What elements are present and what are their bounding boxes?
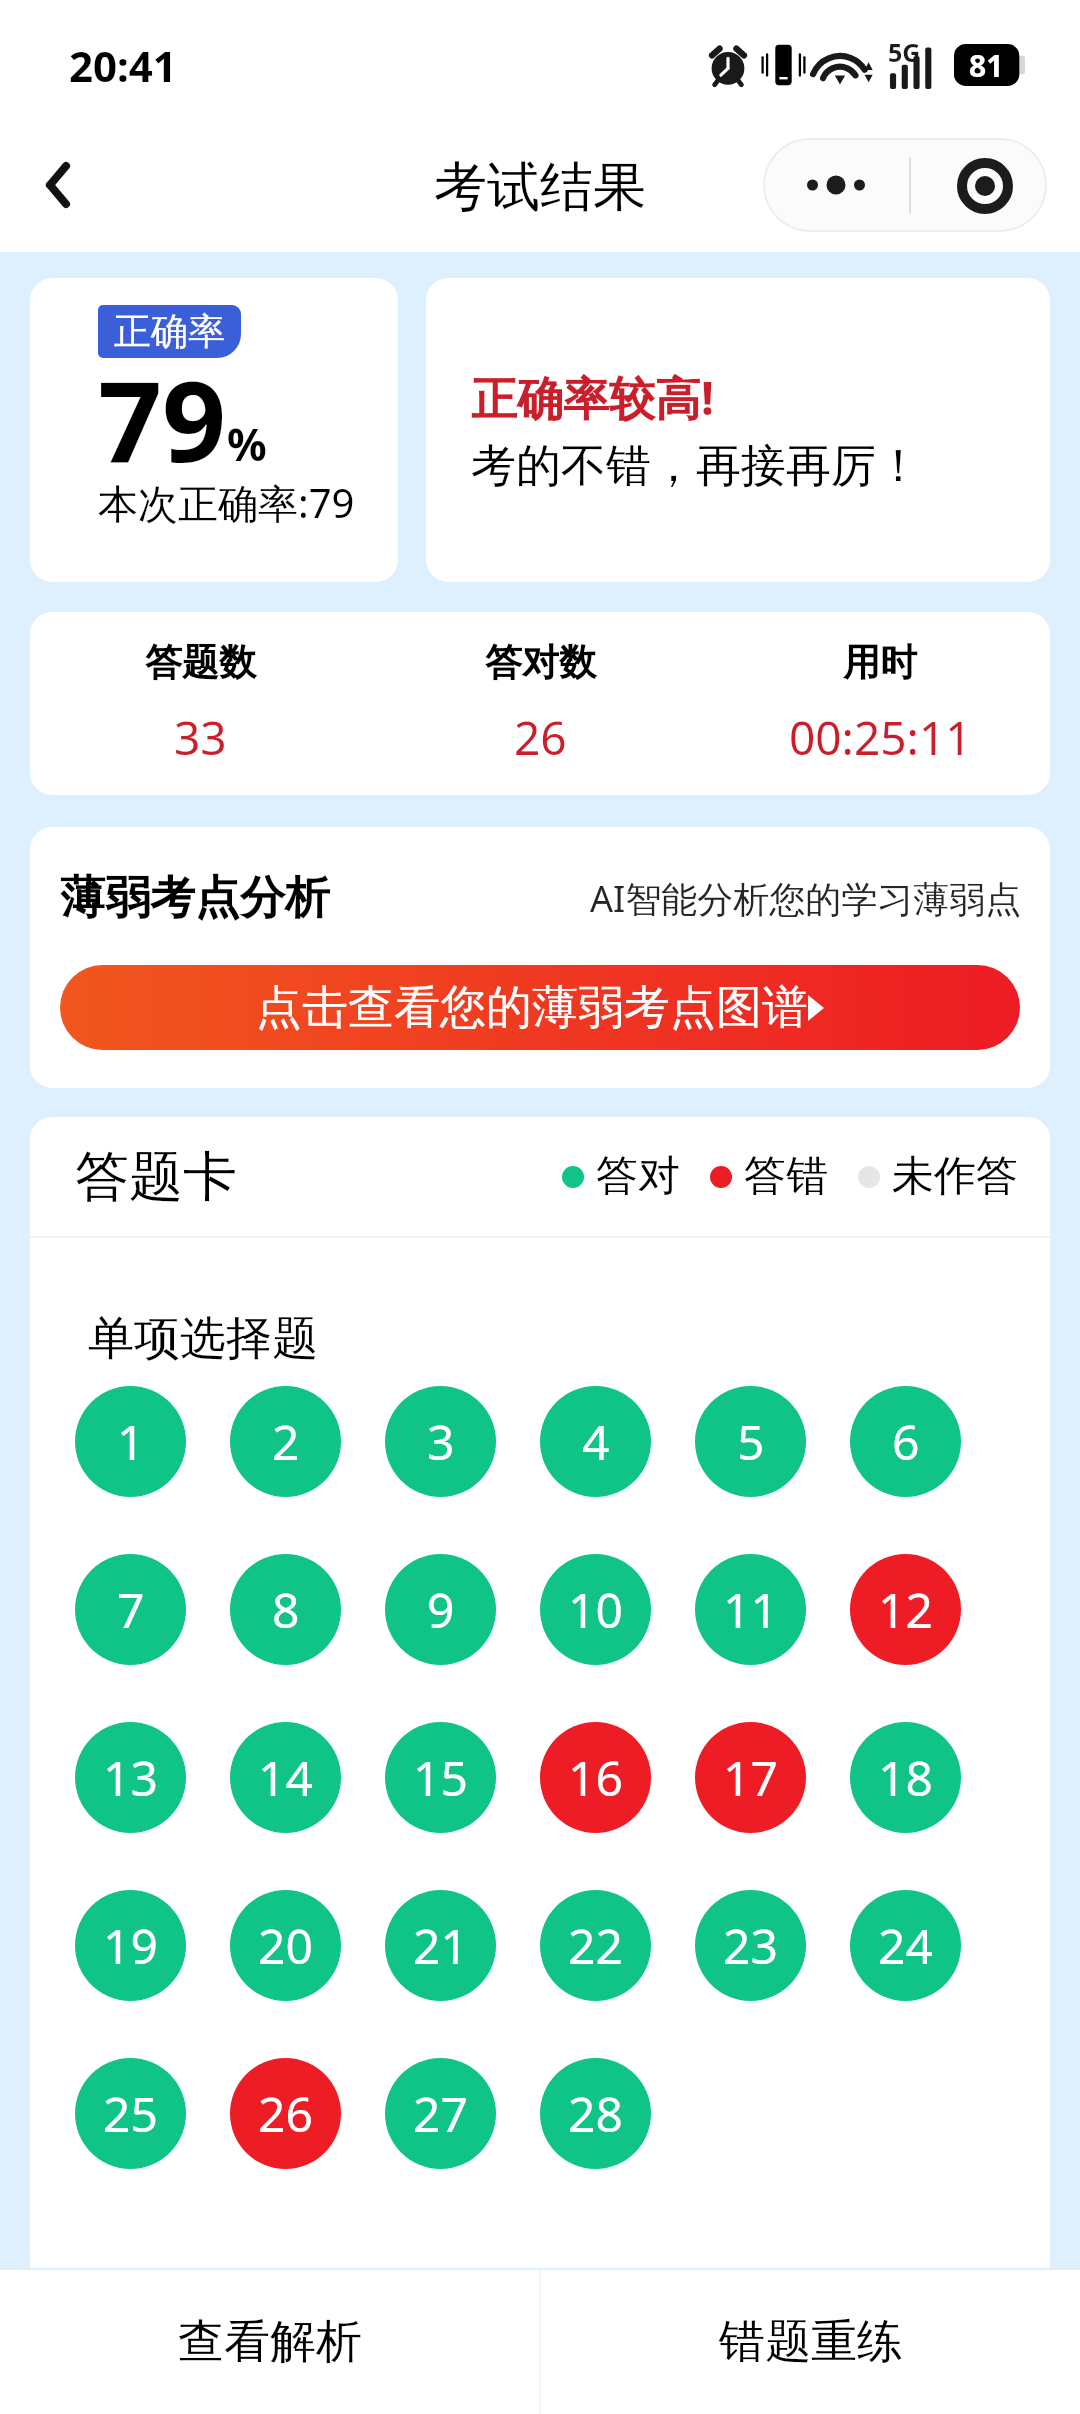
button[interactable]: Close mini program — [911, 138, 1047, 232]
button[interactable]: 15 — [385, 1722, 496, 1833]
staticText: 答对 — [596, 1150, 680, 1203]
staticText: 26 — [258, 2081, 313, 2146]
staticText: 3 — [427, 1409, 455, 1474]
staticText: 20 — [258, 1913, 313, 1978]
button[interactable]: 错题重练 — [541, 2270, 1080, 2414]
button[interactable]: 14 — [230, 1722, 341, 1833]
button[interactable]: 1 — [75, 1386, 186, 1497]
staticText: 9 — [427, 1577, 455, 1642]
staticText: 22 — [568, 1913, 623, 1978]
staticText: 查看解析 — [178, 2313, 362, 2371]
button[interactable]: 点击查看您的薄弱考点图谱 — [60, 965, 1020, 1050]
staticText: 24 — [878, 1913, 933, 1978]
button[interactable]: 19 — [75, 1890, 186, 2001]
staticText: 10 — [568, 1577, 623, 1642]
button[interactable]: 26 — [230, 2058, 341, 2169]
button[interactable]: 17 — [695, 1722, 806, 1833]
staticText: 00:25:11 — [789, 706, 972, 769]
staticText: 27 — [413, 2081, 468, 2146]
button[interactable]: 25 — [75, 2058, 186, 2169]
staticText: 未作答 — [892, 1150, 1018, 1203]
staticText: 2 — [272, 1409, 300, 1474]
staticText: 12 — [878, 1577, 933, 1642]
staticText: 5G — [888, 35, 921, 69]
staticText: 25 — [103, 2081, 158, 2146]
button[interactable]: 6 — [850, 1386, 961, 1497]
button[interactable]: 4 — [540, 1386, 651, 1497]
staticText: 19 — [103, 1913, 158, 1978]
staticText: 1 — [117, 1409, 145, 1474]
staticText: 26 — [514, 706, 567, 769]
staticText: 点击查看您的薄弱考点图谱 — [256, 979, 808, 1037]
staticText: 本次正确率:79 — [98, 475, 355, 530]
button[interactable]: 16 — [540, 1722, 651, 1833]
button[interactable]: More options — [763, 138, 909, 232]
button[interactable]: 18 — [850, 1722, 961, 1833]
staticText: 33 — [174, 706, 227, 769]
button[interactable]: 8 — [230, 1554, 341, 1665]
staticText: % — [227, 414, 267, 474]
staticText: 5 — [737, 1409, 765, 1474]
button[interactable]: 20 — [230, 1890, 341, 2001]
staticText: 23 — [723, 1913, 778, 1978]
staticText: 用时 — [843, 639, 917, 686]
staticText: 16 — [568, 1745, 623, 1810]
staticText: 15 — [413, 1745, 468, 1810]
staticText: 正确率较高! — [471, 366, 714, 429]
staticText: 错题重练 — [719, 2313, 903, 2371]
button[interactable]: 7 — [75, 1554, 186, 1665]
button[interactable]: 3 — [385, 1386, 496, 1497]
staticText: 答题数 — [145, 639, 256, 686]
button[interactable]: 查看解析 — [0, 2270, 539, 2414]
staticText: 28 — [568, 2081, 623, 2146]
button[interactable]: 11 — [695, 1554, 806, 1665]
staticText: 答题卡 — [75, 1143, 237, 1211]
button[interactable]: 13 — [75, 1722, 186, 1833]
button[interactable]: 28 — [540, 2058, 651, 2169]
button[interactable]: 23 — [695, 1890, 806, 2001]
button[interactable]: Back — [21, 148, 95, 222]
button[interactable]: 9 — [385, 1554, 496, 1665]
staticText: 14 — [258, 1745, 313, 1810]
staticText: 薄弱考点分析 — [60, 870, 330, 927]
button[interactable]: 27 — [385, 2058, 496, 2169]
staticText: 答对数 — [485, 639, 596, 686]
button[interactable]: 2 — [230, 1386, 341, 1497]
staticText: 答错 — [744, 1150, 828, 1203]
button[interactable]: 10 — [540, 1554, 651, 1665]
staticText: 单项选择题 — [88, 1310, 318, 1368]
staticText: 13 — [103, 1745, 158, 1810]
staticText: 正确率 — [114, 308, 225, 355]
staticText: 18 — [878, 1745, 933, 1810]
button[interactable]: 12 — [850, 1554, 961, 1665]
staticText: 考试结果 — [434, 154, 646, 221]
staticText: 11 — [723, 1577, 778, 1642]
staticText: 81 — [969, 45, 1004, 86]
staticText: 8 — [272, 1577, 300, 1642]
button[interactable]: 22 — [540, 1890, 651, 2001]
staticText: AI智能分析您的学习薄弱点 — [590, 874, 1022, 923]
button[interactable]: 24 — [850, 1890, 961, 2001]
staticText: 17 — [723, 1745, 778, 1810]
staticText: 7 — [117, 1577, 145, 1642]
staticText: 4 — [582, 1409, 610, 1474]
staticText: 考的不错，再接再厉！ — [471, 438, 921, 495]
staticText: 79 — [98, 342, 227, 495]
button[interactable]: 5 — [695, 1386, 806, 1497]
staticText: 20:41 — [69, 37, 177, 94]
staticText: 21 — [413, 1913, 468, 1978]
button[interactable]: 21 — [385, 1890, 496, 2001]
staticText: 6 — [892, 1409, 920, 1474]
